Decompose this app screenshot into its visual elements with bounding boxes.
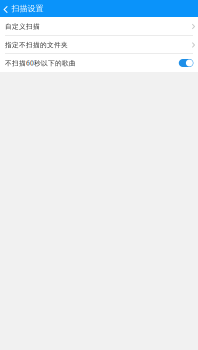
button[interactable]: Back (0, 0, 12, 17)
button[interactable]: 指定不扫描的文件夹 (0, 36, 198, 54)
button[interactable]: 自定义扫描 (0, 17, 198, 36)
button[interactable]: 不扫描60秒以下的歌曲 (0, 54, 198, 72)
staticText: 自定义扫描 (5, 22, 40, 31)
staticText: 扫描设置 (12, 4, 44, 13)
staticText: 指定不扫描的文件夹 (5, 41, 68, 49)
staticText: 不扫描60秒以下的歌曲 (5, 59, 76, 67)
